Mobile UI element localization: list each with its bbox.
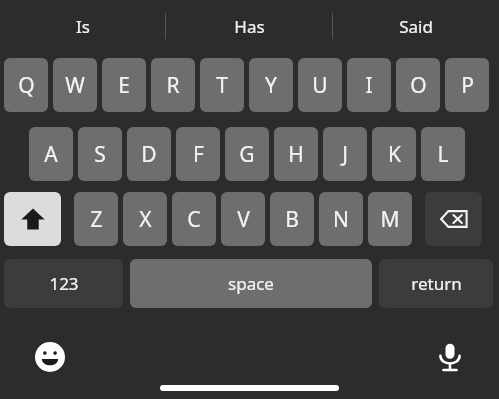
staticText: Q: [18, 71, 35, 100]
button[interactable]: 123: [4, 259, 123, 308]
button[interactable]: X: [123, 192, 167, 246]
button[interactable]: V: [221, 192, 265, 246]
button[interactable]: H: [274, 127, 318, 181]
button[interactable]: J: [323, 127, 367, 181]
button[interactable]: W: [53, 58, 97, 112]
staticText: H: [288, 140, 304, 169]
button[interactable]: space: [130, 259, 372, 308]
button[interactable]: K: [372, 127, 416, 181]
staticText: T: [216, 71, 228, 100]
staticText: 123: [49, 272, 79, 295]
staticText: Said: [399, 15, 433, 38]
staticText: B: [285, 205, 299, 234]
staticText: Is: [76, 15, 90, 38]
staticText: L: [437, 140, 449, 169]
staticText: I: [365, 71, 373, 100]
button[interactable]: T: [200, 58, 244, 112]
staticText: S: [94, 140, 106, 169]
staticText: R: [166, 71, 180, 100]
button[interactable]: N: [319, 192, 363, 246]
button[interactable]: Shift: [4, 192, 61, 246]
button[interactable]: O: [396, 58, 440, 112]
button[interactable]: B: [270, 192, 314, 246]
button[interactable]: S: [78, 127, 122, 181]
staticText: K: [388, 140, 401, 169]
staticText: F: [193, 140, 204, 169]
button[interactable]: F: [176, 127, 220, 181]
button[interactable]: P: [445, 58, 489, 112]
staticText: E: [118, 71, 130, 100]
button[interactable]: Y: [249, 58, 293, 112]
staticText: W: [65, 71, 85, 100]
button[interactable]: U: [298, 58, 342, 112]
staticText: V: [237, 205, 250, 234]
staticText: J: [342, 140, 348, 169]
button[interactable]: G: [225, 127, 269, 181]
button[interactable]: Voice input: [430, 337, 470, 377]
staticText: Has: [234, 15, 265, 38]
button[interactable]: Emoji: [30, 337, 70, 377]
staticText: space: [228, 272, 274, 295]
button[interactable]: M: [368, 192, 412, 246]
button[interactable]: Said: [332, 0, 499, 52]
staticText: G: [239, 140, 255, 169]
staticText: A: [44, 140, 58, 169]
staticText: X: [139, 205, 152, 234]
button[interactable]: Z: [74, 192, 118, 246]
button[interactable]: C: [172, 192, 216, 246]
staticText: Y: [265, 71, 277, 100]
button[interactable]: R: [151, 58, 195, 112]
staticText: D: [141, 140, 157, 169]
button[interactable]: Is: [0, 0, 166, 52]
staticText: Z: [90, 205, 103, 234]
staticText: O: [410, 71, 427, 100]
staticText: N: [333, 205, 349, 234]
button[interactable]: I: [347, 58, 391, 112]
button[interactable]: E: [102, 58, 146, 112]
staticText: U: [312, 71, 328, 100]
staticText: M: [380, 205, 400, 234]
staticText: C: [187, 205, 201, 234]
button[interactable]: L: [421, 127, 465, 181]
button[interactable]: A: [29, 127, 73, 181]
button[interactable]: D: [127, 127, 171, 181]
staticText: P: [461, 71, 474, 100]
staticText: return: [411, 272, 462, 295]
button[interactable]: Q: [4, 58, 48, 112]
button[interactable]: Has: [166, 0, 332, 52]
button[interactable]: Backspace: [425, 192, 482, 246]
button[interactable]: return: [379, 259, 493, 308]
